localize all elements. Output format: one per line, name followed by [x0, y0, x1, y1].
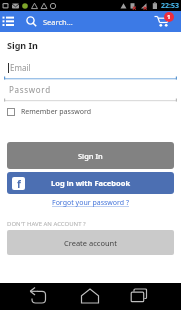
button[interactable]: Remember password	[7, 107, 92, 117]
button[interactable]	[0, 283, 61, 310]
button[interactable]: Email	[0, 58, 181, 80]
staticText: Sign In	[7, 39, 38, 51]
staticText: Log in with Facebook	[51, 178, 131, 188]
staticText: Password	[9, 84, 51, 95]
button[interactable]: Search...	[25, 11, 125, 32]
staticText: 1	[167, 13, 171, 21]
staticText: 22:53	[161, 1, 179, 11]
staticText: Search...	[43, 17, 73, 27]
button[interactable]: Forgot your password ?	[52, 198, 130, 208]
button[interactable]: f	[7, 172, 174, 194]
button[interactable]	[61, 283, 121, 310]
button[interactable]	[121, 283, 181, 310]
staticText: Sign In	[78, 151, 103, 161]
button[interactable]: Sign In	[7, 142, 174, 169]
staticText: Email	[10, 62, 31, 73]
button[interactable]	[0, 11, 22, 32]
button[interactable]: 1	[151, 11, 181, 32]
button[interactable]: Password	[0, 82, 181, 102]
staticText: Remember password	[21, 107, 92, 117]
staticText: DON'T HAVE AN ACCOUNT ?	[7, 220, 86, 228]
staticText: Create account	[64, 238, 117, 248]
staticText: f	[17, 177, 21, 190]
button[interactable]: Create account	[7, 230, 174, 255]
